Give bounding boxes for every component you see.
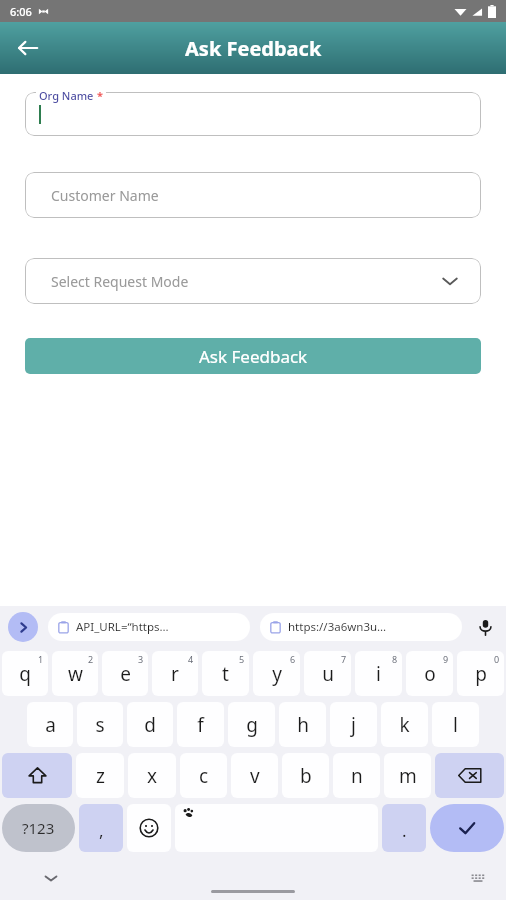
button[interactable]: p <box>457 651 504 696</box>
button[interactable]: https://3a6wn3u… <box>260 613 462 641</box>
staticText: Select Request Mode <box>51 272 189 291</box>
staticText: 1 <box>38 653 44 665</box>
button[interactable]: Shift <box>2 753 72 798</box>
button[interactable]: Backspace <box>435 753 504 798</box>
button[interactable]: API_URL=“https… <box>48 613 250 641</box>
staticText: . <box>402 819 407 842</box>
button[interactable]: m <box>384 753 431 798</box>
staticText: i <box>376 661 381 687</box>
button[interactable]: w <box>52 651 98 696</box>
staticText: 0 <box>494 653 500 665</box>
button[interactable]: i <box>355 651 402 696</box>
button[interactable]: s <box>77 702 123 747</box>
staticText: Ask Feedback <box>199 345 308 368</box>
button[interactable]: Ask Feedback <box>25 338 481 374</box>
button[interactable]: Select Request Mode <box>25 258 481 304</box>
staticText: g <box>246 712 258 738</box>
staticText: 6 <box>290 653 296 665</box>
staticText: b <box>300 763 312 789</box>
button[interactable]: g <box>228 702 275 747</box>
button[interactable]: Customer Name <box>25 172 481 218</box>
button[interactable]: Back <box>8 28 48 68</box>
staticText: https://3a6wn3u… <box>288 619 387 635</box>
staticText: x <box>147 763 158 789</box>
staticText: ?123 <box>22 818 55 838</box>
button[interactable]: l <box>432 702 479 747</box>
staticText: h <box>297 712 309 738</box>
button[interactable]: e <box>102 651 148 696</box>
button[interactable]: f <box>177 702 224 747</box>
staticText: 4 <box>188 653 194 665</box>
staticText: n <box>351 763 363 789</box>
button[interactable]: h <box>279 702 326 747</box>
staticText: Customer Name <box>51 186 159 205</box>
button[interactable]: t <box>202 651 249 696</box>
staticText: y <box>272 661 282 687</box>
staticText: * <box>97 88 103 103</box>
button[interactable]: a <box>27 702 73 747</box>
staticText: m <box>399 763 417 789</box>
button[interactable]: , <box>79 804 123 852</box>
button[interactable]: x <box>128 753 176 798</box>
button[interactable]: Expand suggestions <box>8 612 38 642</box>
staticText: w <box>68 661 83 687</box>
button[interactable]: v <box>231 753 278 798</box>
button[interactable]: k <box>381 702 428 747</box>
staticText: c <box>199 763 209 789</box>
button[interactable]: Hide keyboard <box>38 865 64 891</box>
button[interactable]: r <box>152 651 198 696</box>
staticText: , <box>99 819 104 842</box>
staticText: p <box>475 661 487 687</box>
staticText: o <box>424 661 436 687</box>
button[interactable]: Emoji <box>127 804 171 852</box>
staticText: Ask Feedback <box>185 35 322 62</box>
staticText: z <box>96 763 105 789</box>
staticText: r <box>171 661 179 687</box>
staticText: k <box>399 712 410 738</box>
button[interactable]: Voice input <box>472 614 498 640</box>
staticText: e <box>120 661 131 687</box>
staticText: 7 <box>341 653 347 665</box>
button[interactable]: u <box>304 651 351 696</box>
staticText: s <box>95 712 105 738</box>
button[interactable]: ?123 <box>2 804 75 852</box>
staticText: f <box>197 712 204 738</box>
button[interactable]: c <box>180 753 227 798</box>
button[interactable]: y <box>253 651 300 696</box>
staticText: 6:06 <box>10 4 32 19</box>
button[interactable]: q <box>2 651 48 696</box>
staticText: 8 <box>392 653 398 665</box>
button[interactable]: z <box>76 753 124 798</box>
staticText: 3 <box>138 653 144 665</box>
staticText: 2 <box>88 653 94 665</box>
button[interactable]: d <box>127 702 173 747</box>
button[interactable]: n <box>333 753 380 798</box>
staticText: d <box>144 712 156 738</box>
staticText: 9 <box>443 653 449 665</box>
button[interactable]: j <box>330 702 377 747</box>
staticText: q <box>19 661 31 687</box>
button[interactable]: Enter <box>430 804 504 852</box>
staticText: a <box>45 712 56 738</box>
staticText: 5 <box>239 653 245 665</box>
staticText: t <box>222 661 229 687</box>
staticText: u <box>322 661 334 687</box>
button[interactable] <box>25 92 481 136</box>
staticText: API_URL=“https… <box>76 619 169 635</box>
staticText: Org Name <box>39 88 94 103</box>
button[interactable]: b <box>282 753 329 798</box>
button[interactable]: o <box>406 651 453 696</box>
staticText: v <box>250 763 260 789</box>
staticText: l <box>453 712 458 738</box>
button[interactable]: . <box>382 804 426 852</box>
button[interactable]: Space <box>175 804 378 852</box>
button[interactable]: Switch keyboard <box>465 865 491 891</box>
staticText: j <box>351 712 356 738</box>
